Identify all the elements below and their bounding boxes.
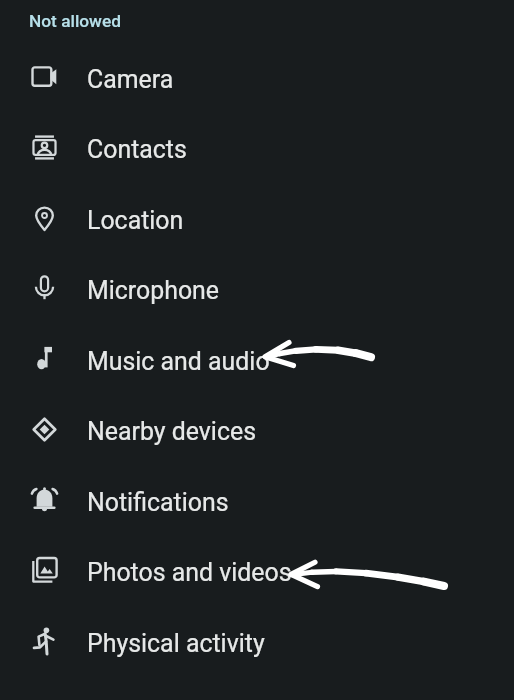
other: Annotation arrows [0, 0, 514, 700]
button[interactable]: Contacts [0, 114, 514, 185]
button[interactable]: Music and audio [0, 326, 514, 397]
staticText: Music and audio [87, 347, 270, 376]
staticText: Location [87, 206, 184, 235]
button[interactable]: Microphone [0, 255, 514, 326]
button[interactable]: Nearby devices [0, 396, 514, 467]
staticText: Not allowed [29, 11, 121, 31]
staticText: Contacts [87, 135, 187, 164]
button[interactable]: Camera [0, 44, 514, 115]
button[interactable]: Photos and videos [0, 537, 514, 608]
staticText: Photos and videos [87, 558, 292, 587]
button[interactable]: Location [0, 185, 514, 256]
button[interactable]: Not allowed [29, 11, 121, 31]
button[interactable]: Physical activity [0, 608, 514, 679]
staticText: Physical activity [87, 629, 265, 658]
button[interactable]: Notifications [0, 467, 514, 538]
staticText: Microphone [87, 276, 220, 305]
staticText: Nearby devices [87, 417, 256, 446]
staticText: Notifications [87, 488, 229, 517]
staticText: Camera [87, 65, 174, 94]
